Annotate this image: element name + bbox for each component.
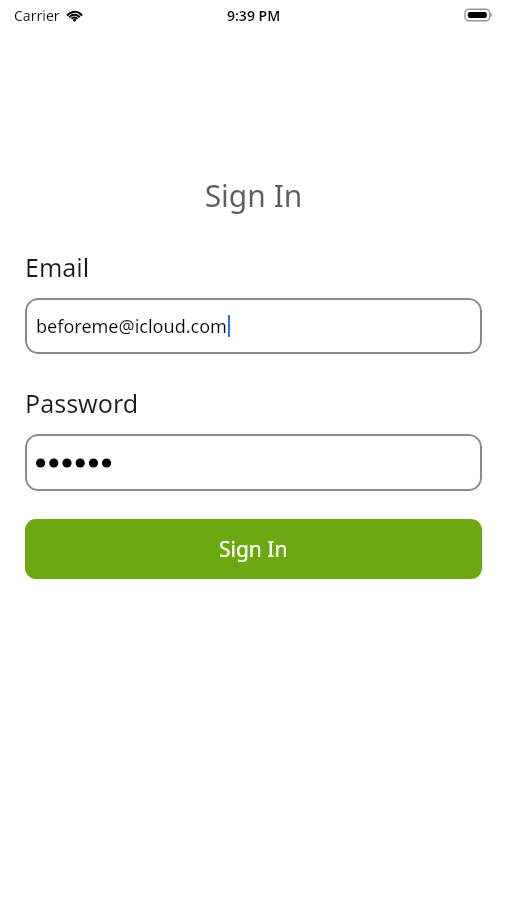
- staticText: Email: [25, 250, 90, 284]
- staticText: 9:39 PM: [227, 6, 281, 25]
- button[interactable]: [25, 434, 482, 491]
- staticText: beforeme@icloud.com: [36, 314, 227, 339]
- other: Battery full: [465, 8, 493, 22]
- staticText: Sign In: [219, 535, 288, 564]
- button[interactable]: beforeme@icloud.com: [25, 298, 482, 354]
- staticText: Sign In: [0, 175, 507, 216]
- staticText: Carrier: [14, 6, 60, 25]
- button[interactable]: Sign In: [25, 519, 482, 579]
- other: Wi-Fi signal: [66, 9, 83, 22]
- staticText: Password: [25, 386, 139, 420]
